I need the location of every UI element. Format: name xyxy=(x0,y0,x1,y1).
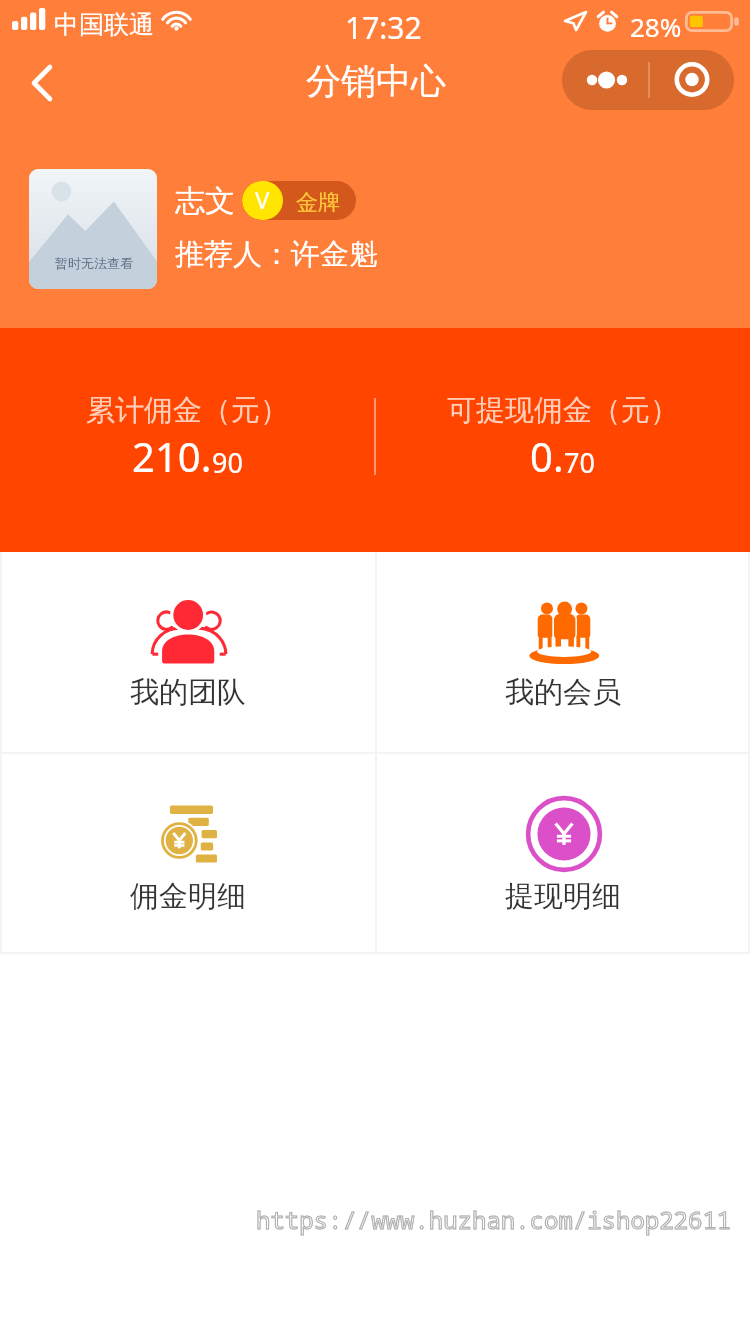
staticText: 暂时无法查看 xyxy=(55,255,133,271)
button[interactable]: More options xyxy=(562,50,734,110)
staticText: 可提现佣金（元） xyxy=(447,392,679,429)
staticText: 我的团队 xyxy=(130,674,246,711)
staticText: 累计佣金（元） xyxy=(86,392,289,429)
staticText: 70 xyxy=(564,444,595,481)
staticText: 210. xyxy=(132,429,212,483)
staticText: 金牌 xyxy=(296,189,340,217)
button[interactable]: 我的团队 xyxy=(0,552,375,752)
staticText: 我的会员 xyxy=(505,674,621,711)
staticText: 佣金明细 xyxy=(130,878,246,915)
staticText: 推荐人：许金魁 xyxy=(175,236,378,273)
button[interactable]: 我的会员 xyxy=(375,552,750,752)
staticText: 90 xyxy=(212,444,243,481)
staticText: V xyxy=(255,183,270,216)
staticText: 28% xyxy=(630,9,682,44)
staticText: 17:32 xyxy=(345,7,422,48)
staticText: https://www.huzhan.com/ishop22611 xyxy=(256,1203,732,1236)
button[interactable]: Back xyxy=(0,48,84,128)
staticText: 提现明细 xyxy=(505,878,621,915)
staticText: 分销中心 xyxy=(306,59,446,103)
staticText: 志文 xyxy=(175,182,235,220)
staticText: 0. xyxy=(530,429,564,483)
button[interactable]: 佣金明细 xyxy=(0,754,375,954)
button[interactable]: 提现明细 xyxy=(375,754,750,954)
staticText: 中国联通 xyxy=(54,9,154,40)
